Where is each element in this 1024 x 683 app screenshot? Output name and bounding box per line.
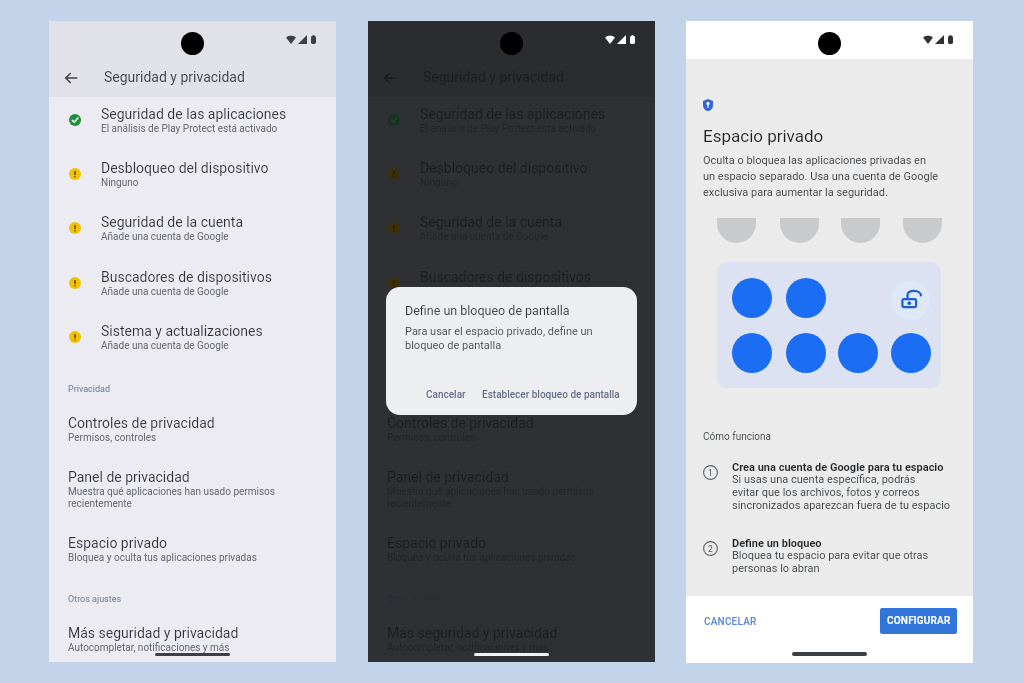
- staticText: Ninguno: [420, 177, 458, 189]
- staticText: Autocompletar, notificaciones y más: [68, 642, 230, 654]
- staticText: Añade una cuenta de Google: [101, 286, 229, 298]
- staticText: Más seguridad y privacidad: [387, 625, 558, 641]
- staticText: Muestra qué aplicaciones han usado permi…: [387, 486, 594, 510]
- staticText: Sistema y actualizaciones: [101, 323, 263, 339]
- staticText: Ninguno: [101, 177, 139, 189]
- staticText: Define un bloqueo de pantalla: [405, 303, 570, 318]
- staticText: El análisis de Play Protect está activad…: [101, 123, 278, 135]
- staticText: Otros ajustes: [68, 594, 122, 605]
- staticText: Controles de privacidad: [387, 415, 534, 431]
- staticText: Bloquea tu espacio para evitar que otras…: [732, 549, 929, 575]
- staticText: Espacio privado: [68, 535, 168, 551]
- button[interactable]: Sistema y actualizaciones: [49, 322, 336, 376]
- button[interactable]: Seguridad de las aplicaciones: [49, 105, 336, 159]
- staticText: Desbloqueo del dispositivo: [420, 160, 588, 176]
- button[interactable]: Cancelar: [418, 384, 474, 406]
- staticText: Panel de privacidad: [68, 469, 190, 485]
- staticText: Bloquea y oculta tus aplicaciones privad…: [387, 552, 576, 564]
- button[interactable]: CONFIGURAR: [880, 608, 957, 634]
- button[interactable]: Atrás: [57, 64, 84, 91]
- staticText: Privacidad: [387, 384, 430, 395]
- staticText: Seguridad de la cuenta: [101, 214, 244, 230]
- staticText: Seguridad y privacidad: [104, 69, 245, 85]
- button[interactable]: Atrás: [376, 64, 403, 91]
- button[interactable]: Seguridad de las aplicaciones: [368, 105, 655, 159]
- staticText: CONFIGURAR: [887, 615, 951, 627]
- button[interactable]: Espacio privado: [368, 529, 655, 569]
- staticText: Crea una cuenta de Google para tu espaci…: [732, 461, 944, 474]
- staticText: Añade una cuenta de Google: [420, 340, 548, 352]
- button[interactable]: Sistema y actualizaciones: [368, 322, 655, 376]
- staticText: Si usas una cuenta específica, podrás ev…: [732, 473, 951, 512]
- staticText: Permisos, controles: [68, 432, 157, 444]
- staticText: Añade una cuenta de Google: [420, 231, 548, 243]
- staticText: Cancelar: [426, 389, 466, 401]
- staticText: Buscadores de dispositivos: [101, 269, 272, 285]
- button[interactable]: Desbloqueo del dispositivo: [49, 159, 336, 213]
- staticText: Añade una cuenta de Google: [101, 231, 229, 243]
- button[interactable]: Buscadores de dispositivos: [368, 268, 655, 322]
- staticText: Privacidad: [68, 384, 111, 395]
- button[interactable]: Controles de privacidad: [49, 409, 336, 449]
- staticText: Espacio privado: [703, 126, 824, 146]
- button[interactable]: CANCELAR: [697, 610, 764, 634]
- button[interactable]: Buscadores de dispositivos: [49, 268, 336, 322]
- staticText: Define un bloqueo: [732, 537, 822, 550]
- staticText: Desbloqueo del dispositivo: [101, 160, 269, 176]
- staticText: 1: [708, 468, 713, 478]
- staticText: Cómo funciona: [703, 431, 772, 443]
- staticText: Autocompletar, notificaciones y más: [387, 642, 549, 654]
- staticText: Seguridad de la cuenta: [420, 214, 563, 230]
- staticText: Seguridad de las aplicaciones: [101, 106, 287, 122]
- staticText: Para usar el espacio privado, define un …: [405, 325, 593, 352]
- button[interactable]: Seguridad de la cuenta: [49, 213, 336, 267]
- staticText: Panel de privacidad: [387, 469, 509, 485]
- staticText: Muestra qué aplicaciones han usado permi…: [68, 486, 275, 510]
- staticText: Espacio privado: [387, 535, 487, 551]
- staticText: Más seguridad y privacidad: [68, 625, 239, 641]
- button[interactable]: Panel de privacidad: [368, 463, 655, 515]
- button[interactable]: Más seguridad y privacidad: [368, 619, 655, 659]
- staticText: El análisis de Play Protect está activad…: [420, 123, 597, 135]
- staticText: Sistema y actualizaciones: [420, 323, 582, 339]
- button[interactable]: Seguridad de la cuenta: [368, 213, 655, 267]
- staticText: Añade una cuenta de Google: [420, 286, 548, 298]
- button[interactable]: Controles de privacidad: [368, 409, 655, 449]
- button[interactable]: Más seguridad y privacidad: [49, 619, 336, 659]
- button[interactable]: Panel de privacidad: [49, 463, 336, 515]
- staticText: Seguridad y privacidad: [423, 69, 564, 85]
- staticText: Permisos, controles: [387, 432, 476, 444]
- button[interactable]: Establecer bloqueo de pantalla: [474, 384, 628, 406]
- button[interactable]: Espacio privado: [49, 529, 336, 569]
- staticText: Oculta o bloquea las aplicaciones privad…: [703, 154, 939, 198]
- staticText: CANCELAR: [704, 616, 757, 628]
- button[interactable]: Desbloqueo del dispositivo: [368, 159, 655, 213]
- staticText: 2: [708, 544, 713, 554]
- staticText: Establecer bloqueo de pantalla: [482, 389, 620, 401]
- staticText: Bloquea y oculta tus aplicaciones privad…: [68, 552, 257, 564]
- staticText: Seguridad de las aplicaciones: [420, 106, 606, 122]
- staticText: Buscadores de dispositivos: [420, 269, 591, 285]
- staticText: Controles de privacidad: [68, 415, 215, 431]
- staticText: Añade una cuenta de Google: [101, 340, 229, 352]
